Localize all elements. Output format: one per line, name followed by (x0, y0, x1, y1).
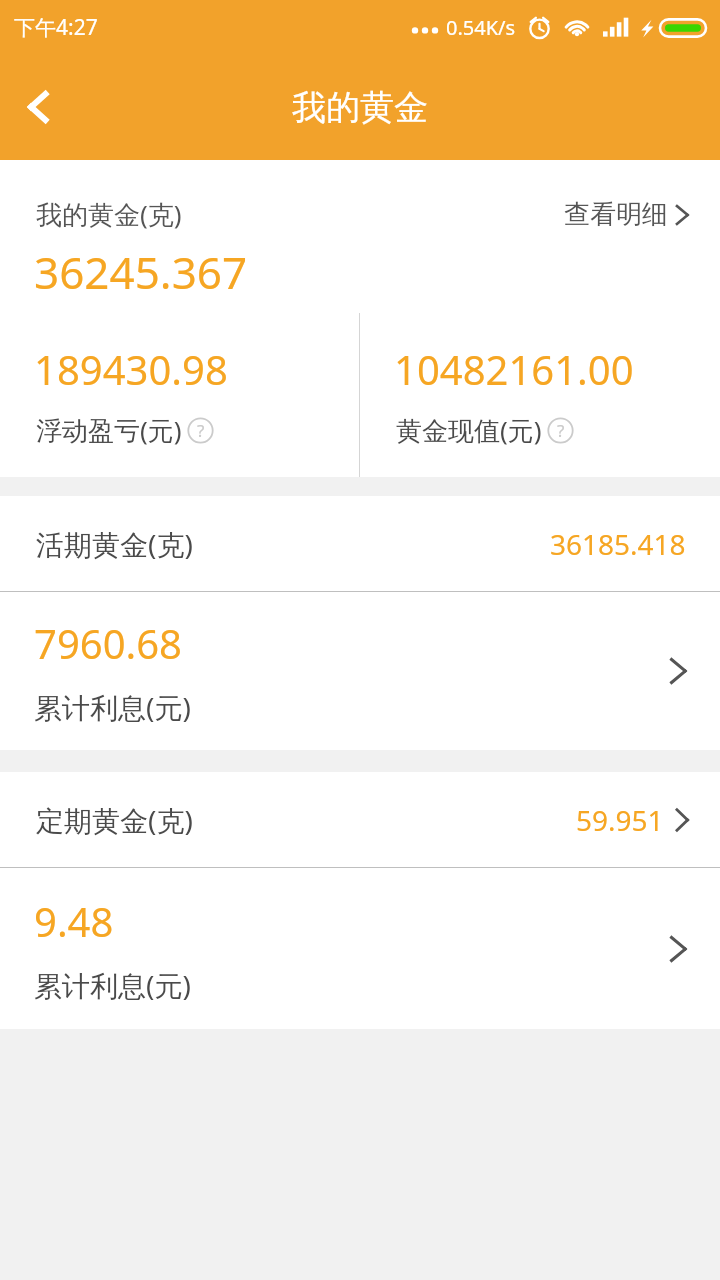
button[interactable]: Back (0, 68, 78, 146)
staticText: 黄金现值(元) (396, 412, 542, 448)
button[interactable]: 7960.68 (0, 592, 720, 750)
staticText: 9.48 (34, 894, 114, 948)
staticText: 活期黄金(克) (36, 525, 193, 563)
button[interactable]: 10482161.00 (360, 313, 720, 477)
staticText: 10482161.00 (394, 342, 634, 396)
button[interactable]: 活期黄金(克) (0, 496, 720, 591)
staticText: 定期黄金(克) (36, 801, 193, 839)
staticText: ? (557, 419, 565, 442)
button[interactable]: 189430.98 (0, 313, 359, 477)
staticText: 累计利息(元) (34, 966, 191, 1004)
button[interactable]: 9.48 (0, 868, 720, 1029)
staticText: 189430.98 (34, 342, 228, 396)
staticText: 7960.68 (34, 616, 182, 670)
staticText: 59.951 (576, 801, 664, 839)
staticText: 下午4:27 (14, 13, 98, 42)
staticText: 累计利息(元) (34, 688, 191, 726)
staticText: 浮动盈亏(元) (36, 412, 182, 448)
button[interactable]: 定期黄金(克) (0, 772, 720, 867)
button[interactable]: 查看明细 (564, 198, 696, 231)
staticText: 36245.367 (34, 242, 248, 302)
staticText: 36185.418 (550, 525, 686, 563)
staticText: 查看明细 (564, 198, 668, 231)
staticText: 我的黄金 (292, 86, 428, 129)
staticText: ? (197, 419, 205, 442)
staticText: 我的黄金(克) (36, 196, 182, 232)
staticText: 0.54K/s (446, 14, 516, 41)
